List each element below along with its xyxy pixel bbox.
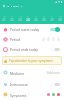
staticText: Period ends today <box>10 47 39 51</box>
staticText: Period <box>10 37 21 41</box>
button[interactable]: F <box>32 14 40 22</box>
button[interactable]: M <box>0 14 8 22</box>
button[interactable]: Toggle on <box>50 27 60 32</box>
staticText: 28 <box>58 18 62 22</box>
button[interactable]: Intercourse <box>0 79 64 89</box>
staticText: 22 <box>10 18 14 22</box>
staticText: Add note <box>47 71 60 75</box>
button[interactable]: Symptoms <box>0 89 64 100</box>
staticText: Medicine <box>10 71 25 75</box>
button[interactable]: M <box>56 14 64 22</box>
staticText: 27 <box>50 18 54 22</box>
staticText: 23 <box>18 18 22 22</box>
button[interactable]: Medicine <box>0 66 64 79</box>
button[interactable]: Pay attention to your symptoms <box>2 56 62 65</box>
button[interactable]: W <box>16 14 24 22</box>
staticText: Pay attention to your symptoms <box>9 59 53 63</box>
button[interactable]: S <box>48 14 56 22</box>
staticText: T <box>11 14 13 17</box>
button[interactable]: T <box>24 14 32 22</box>
staticText: T <box>27 14 29 17</box>
staticText: Symptoms <box>10 93 27 97</box>
staticText: 21 <box>2 18 6 22</box>
button[interactable]: Back <box>0 5 7 7</box>
button[interactable]: Period <box>0 34 64 44</box>
staticText: 25 <box>34 18 38 22</box>
staticText: M <box>59 14 62 17</box>
staticText: Add Note <box>7 5 25 7</box>
button[interactable]: S <box>40 14 48 22</box>
staticText: W <box>19 14 22 17</box>
button[interactable]: Period starts today <box>0 24 64 34</box>
button[interactable]: Toggle off <box>50 47 60 52</box>
button[interactable]: T <box>8 14 16 22</box>
staticText: 26 <box>42 18 46 22</box>
button[interactable]: Toggle off <box>50 82 60 87</box>
button[interactable]: Period ends today <box>0 44 64 54</box>
staticText: Intercourse <box>10 82 28 86</box>
staticText: 24 <box>26 18 30 22</box>
staticText: M <box>3 14 6 17</box>
staticText: F <box>35 14 37 17</box>
button[interactable]: Symptoms <box>47 93 60 96</box>
staticText: S <box>43 14 45 17</box>
staticText: Period starts today <box>10 27 40 31</box>
button[interactable]: Flow level <box>42 37 60 41</box>
staticText: S <box>51 14 53 17</box>
